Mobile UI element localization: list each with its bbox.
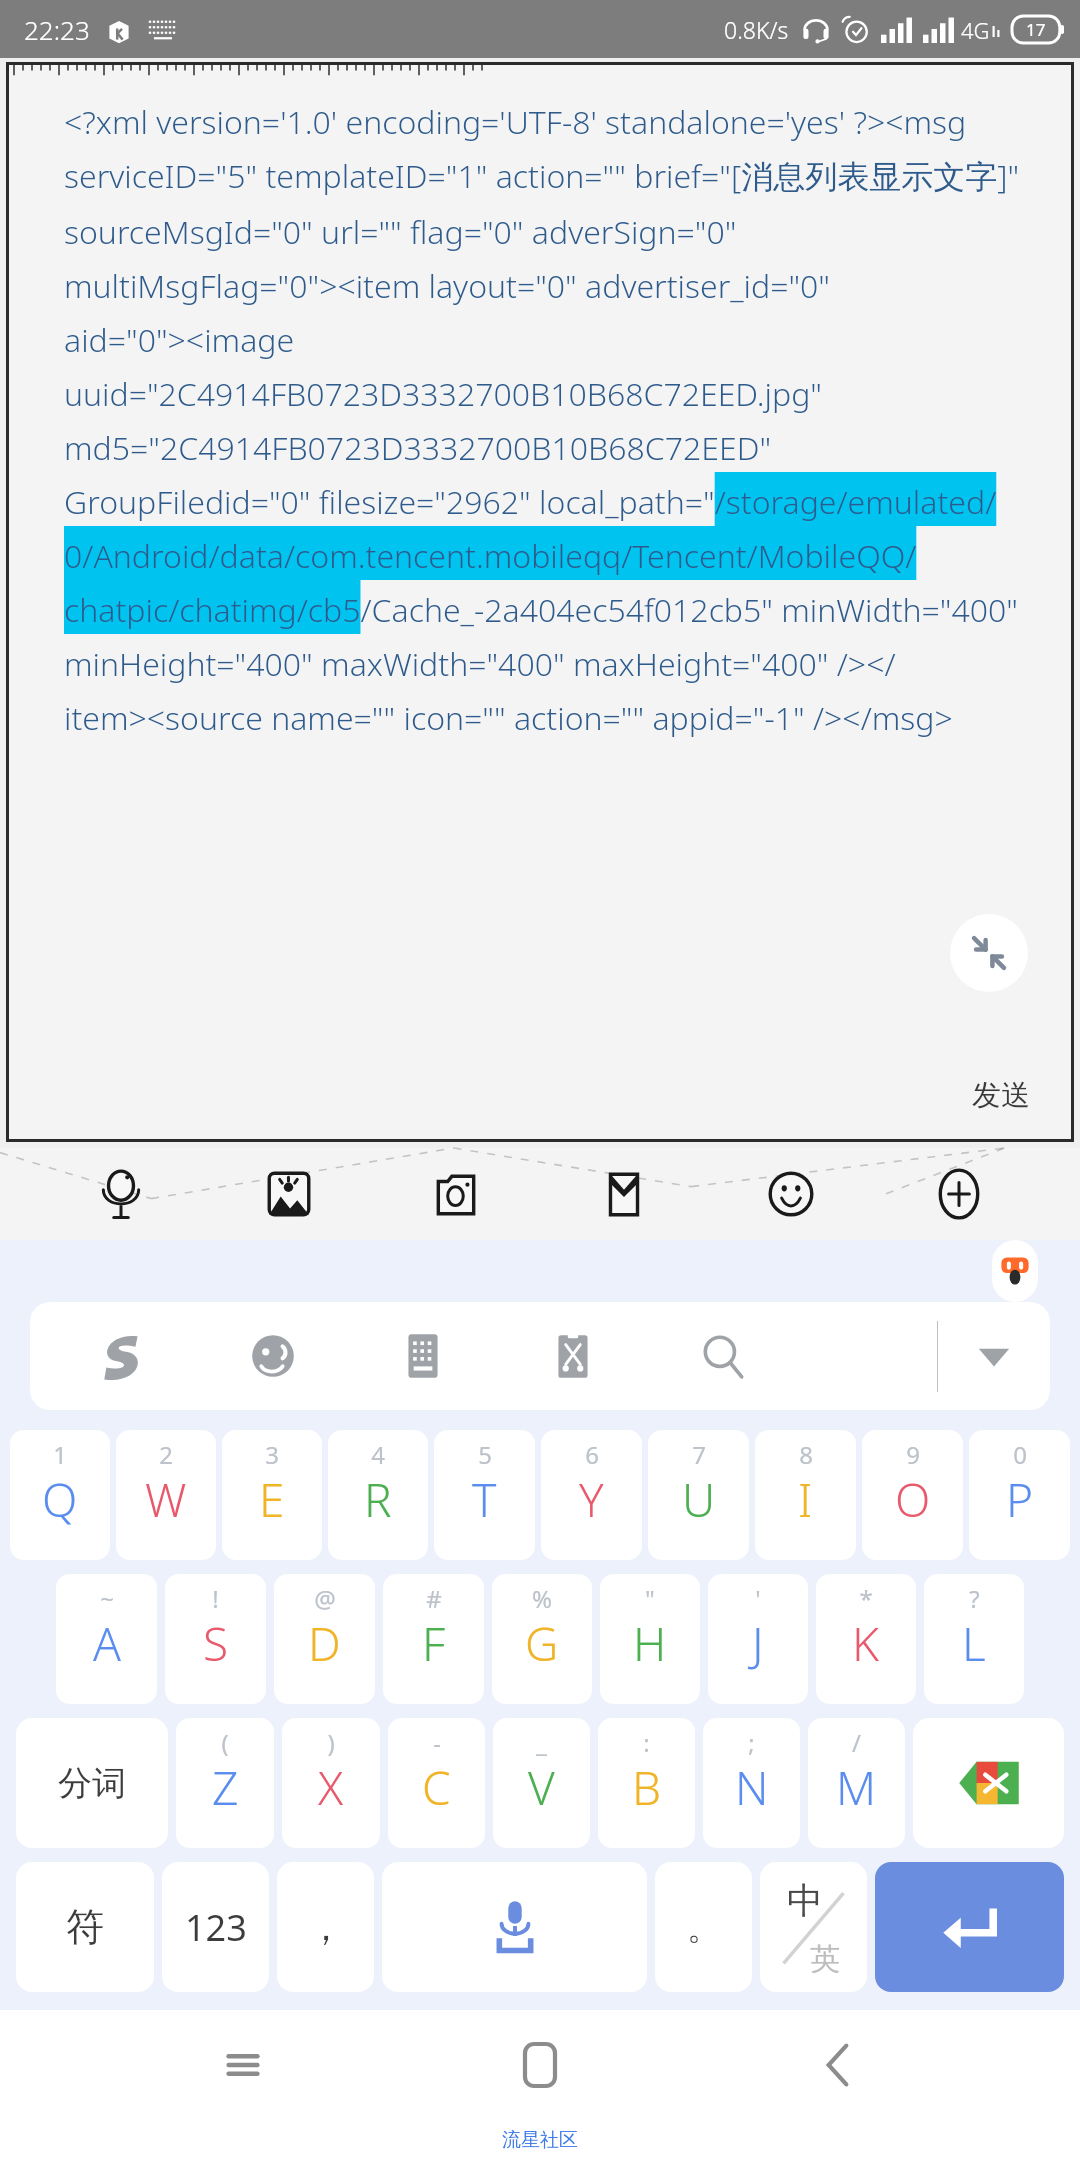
staticText: / (852, 1726, 861, 1759)
staticText: ; (748, 1726, 755, 1759)
staticText: 8 (799, 1438, 813, 1471)
staticText: J (752, 1612, 764, 1675)
button[interactable]: # (383, 1574, 484, 1704)
button[interactable]: 发送 (962, 1071, 1040, 1120)
staticText: 9 (906, 1438, 920, 1471)
button[interactable]: Emoji (745, 1148, 837, 1240)
staticText: V (528, 1756, 555, 1819)
staticText: ， (308, 1905, 344, 1950)
button[interactable]: Enter (875, 1862, 1064, 1992)
button[interactable]: Clipboard (498, 1302, 648, 1410)
button[interactable]: Home (485, 2010, 595, 2120)
staticText: 1 (53, 1438, 67, 1471)
staticText: N (735, 1756, 769, 1819)
staticText: 123 (185, 1903, 247, 1952)
button[interactable]: Camera (410, 1148, 502, 1240)
staticText: <?xml version='1.0' encoding='UTF-8' sta… (64, 100, 1022, 740)
button[interactable]: " (600, 1574, 700, 1704)
staticText: W (145, 1468, 187, 1531)
staticText: F (422, 1612, 446, 1675)
staticText: M (836, 1756, 877, 1819)
button[interactable]: 1 (10, 1430, 110, 1560)
button[interactable]: ! (165, 1574, 266, 1704)
staticText: G (525, 1612, 559, 1675)
button[interactable]: 符 (16, 1862, 154, 1992)
staticText: 4G (961, 15, 990, 45)
button[interactable]: 2 (116, 1430, 216, 1560)
button[interactable]: @ (274, 1574, 375, 1704)
button[interactable]: ( (176, 1718, 274, 1848)
staticText: 6 (585, 1438, 599, 1471)
button[interactable]: 分词 (16, 1718, 168, 1848)
staticText: _ (536, 1726, 547, 1759)
button[interactable]: _ (493, 1718, 590, 1848)
staticText: # (426, 1582, 442, 1615)
button[interactable]: 3 (222, 1430, 322, 1560)
staticText: : (643, 1726, 650, 1759)
button[interactable]: % (492, 1574, 592, 1704)
button[interactable]: ; (703, 1718, 800, 1848)
staticText: 4 (371, 1438, 385, 1471)
staticText: ~ (100, 1582, 114, 1615)
button[interactable]: ~ (56, 1574, 157, 1704)
staticText: Z (212, 1756, 239, 1819)
button[interactable]: Hide keyboard (938, 1302, 1050, 1410)
button[interactable]: Search (648, 1302, 798, 1410)
button[interactable]: / (808, 1718, 905, 1848)
button[interactable]: Red packet (578, 1148, 670, 1240)
staticText: O (895, 1468, 931, 1531)
staticText: - (433, 1726, 441, 1759)
staticText: 流星社区 (502, 2128, 578, 2152)
button[interactable]: Recents (188, 2010, 298, 2120)
staticText: ( (221, 1726, 229, 1759)
staticText: C (422, 1756, 451, 1819)
button[interactable]: Space / Voice input (382, 1862, 647, 1992)
staticText: ' (755, 1582, 761, 1615)
staticText: 22:23 (24, 12, 90, 47)
button[interactable]: Emoji (198, 1302, 348, 1410)
staticText: 2 (159, 1438, 173, 1471)
button[interactable]: 5 (434, 1430, 535, 1560)
button[interactable]: 123 (162, 1862, 269, 1992)
button[interactable]: Photo (243, 1148, 335, 1240)
button[interactable]: 4 (328, 1430, 428, 1560)
button[interactable]: Keyboard layout (348, 1302, 498, 1410)
button[interactable]: Back (783, 2010, 893, 2120)
button[interactable]: Backspace (913, 1718, 1064, 1848)
staticText: 5 (478, 1438, 492, 1471)
staticText: I (798, 1468, 813, 1531)
button[interactable]: Assistant (992, 1240, 1038, 1302)
staticText: R (364, 1468, 392, 1531)
staticText: H (633, 1612, 667, 1675)
button[interactable]: Sogou IME (48, 1302, 198, 1410)
button[interactable]: 6 (541, 1430, 642, 1560)
button[interactable]: 7 (648, 1430, 749, 1560)
staticText: 7 (692, 1438, 706, 1471)
button[interactable]: : (598, 1718, 695, 1848)
button[interactable]: ' (708, 1574, 808, 1704)
staticText: 3 (265, 1438, 279, 1471)
staticText: % (532, 1582, 552, 1615)
button[interactable]: Collapse (950, 914, 1028, 992)
staticText: * (859, 1582, 873, 1615)
staticText: 中 (787, 1878, 823, 1923)
button[interactable]: 。 (655, 1862, 752, 1992)
button[interactable]: Voice message (75, 1148, 167, 1240)
staticText: T (472, 1468, 497, 1531)
button[interactable]: ) (282, 1718, 380, 1848)
button[interactable]: ， (277, 1862, 374, 1992)
button[interactable]: ? (924, 1574, 1024, 1704)
button[interactable]: 9 (862, 1430, 963, 1560)
button[interactable]: More (913, 1148, 1005, 1240)
button[interactable]: - (388, 1718, 485, 1848)
button[interactable]: * (816, 1574, 916, 1704)
button[interactable]: 8 (755, 1430, 856, 1560)
staticText: P (1006, 1468, 1034, 1531)
staticText: 符 (66, 1903, 104, 1951)
button[interactable]: Switch Chinese English (760, 1862, 867, 1992)
staticText: X (318, 1756, 344, 1819)
staticText: L (962, 1612, 986, 1675)
button[interactable]: 0 (969, 1430, 1070, 1560)
staticText: 0.8K/s (724, 14, 789, 45)
staticText: U (682, 1468, 716, 1531)
